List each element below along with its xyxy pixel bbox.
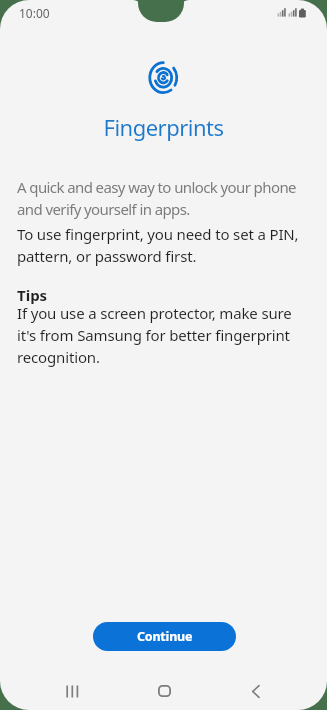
staticText: Tips [17, 285, 48, 305]
button[interactable] [57, 676, 89, 706]
button[interactable] [148, 676, 180, 706]
staticText: If you use a screen protector, make sure… [17, 303, 310, 368]
staticText: 10:00 [19, 5, 50, 21]
staticText: A quick and easy way to unlock your phon… [17, 177, 310, 220]
staticText: Continue [137, 628, 193, 645]
staticText: To use fingerprint, you need to set a PI… [17, 224, 310, 267]
button[interactable] [240, 676, 272, 706]
button[interactable]: Continue [93, 622, 236, 651]
staticText: Fingerprints [0, 112, 327, 142]
